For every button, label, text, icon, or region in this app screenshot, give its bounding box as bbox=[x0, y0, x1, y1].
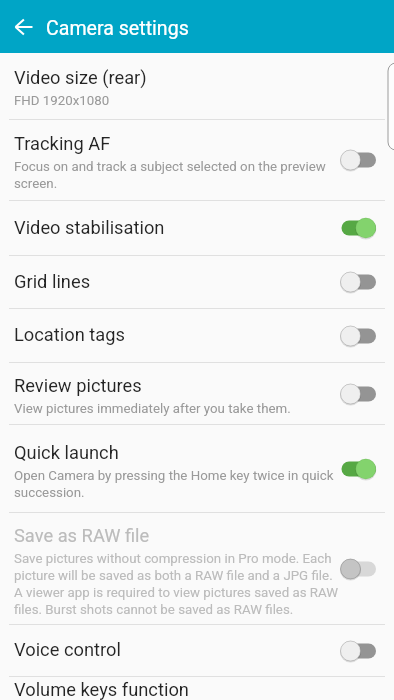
staticText: Tracking AF bbox=[14, 133, 111, 154]
button[interactable]: Toggle bbox=[338, 322, 376, 350]
staticText: Video stabilisation bbox=[14, 217, 165, 238]
button[interactable]: Toggle bbox=[338, 146, 376, 174]
button[interactable]: Voice control bbox=[0, 625, 394, 676]
button[interactable]: Video stabilisation bbox=[0, 201, 394, 255]
staticText: Video size (rear) bbox=[14, 67, 147, 88]
staticText: Open Camera by pressing the Home key twi… bbox=[14, 468, 344, 500]
button[interactable]: Save as RAW file bbox=[0, 513, 394, 624]
staticText: Save as RAW file bbox=[14, 525, 150, 546]
button[interactable]: Grid lines bbox=[0, 256, 394, 308]
button[interactable]: Location tags bbox=[0, 309, 394, 362]
staticText: View pictures immediately after you take… bbox=[14, 401, 291, 417]
button[interactable]: Quick launch bbox=[0, 425, 394, 512]
button[interactable]: Toggle bbox=[338, 214, 376, 242]
button[interactable]: Toggle bbox=[338, 637, 376, 665]
staticText: Save pictures without compression in Pro… bbox=[14, 551, 344, 617]
staticText: Voice control bbox=[14, 639, 121, 660]
staticText: Focus on and track a subject selected on… bbox=[14, 159, 344, 191]
staticText: Review pictures bbox=[14, 375, 142, 396]
staticText: Quick launch bbox=[14, 442, 119, 463]
staticText: Volume keys function bbox=[14, 679, 189, 700]
button[interactable]: Toggle bbox=[338, 268, 376, 296]
button[interactable]: Toggle bbox=[338, 555, 376, 583]
staticText: FHD 1920x1080 bbox=[14, 93, 110, 109]
button[interactable]: Toggle bbox=[338, 455, 376, 483]
staticText: Location tags bbox=[14, 324, 125, 345]
staticText: Camera settings bbox=[46, 17, 189, 40]
staticText: Grid lines bbox=[14, 271, 91, 292]
button[interactable]: Review pictures bbox=[0, 363, 394, 424]
button[interactable]: Toggle bbox=[338, 380, 376, 408]
button[interactable]: Tracking AF bbox=[0, 120, 394, 200]
button[interactable]: Video size (rear) bbox=[0, 53, 394, 119]
button[interactable]: Back bbox=[0, 0, 46, 53]
button[interactable]: Volume keys function bbox=[0, 677, 394, 700]
